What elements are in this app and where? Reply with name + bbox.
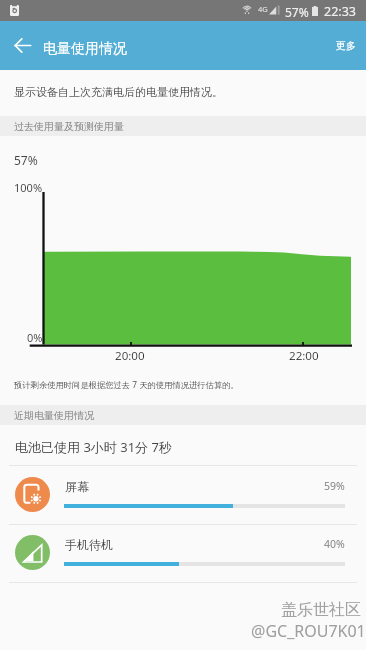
staticText: 更多 <box>336 39 356 52</box>
button[interactable]: Back <box>5 28 39 62</box>
staticText: 电量使用情况 <box>43 40 127 58</box>
staticText: 电池已使用 3小时 31分 7秒 <box>15 438 172 456</box>
staticText: 过去使用量及预测使用量 <box>14 120 124 133</box>
staticText: 22:33 <box>324 3 356 20</box>
staticText: 40% <box>324 537 345 551</box>
button[interactable]: 更多 <box>325 28 366 62</box>
staticText: 盖乐世社区 <box>281 600 361 620</box>
button[interactable]: 手机待机 <box>0 524 366 582</box>
staticText: 57% <box>285 4 309 20</box>
staticText: 屏幕 <box>65 479 89 494</box>
staticText: 57% <box>14 152 38 168</box>
button[interactable]: 屏幕 <box>0 466 366 524</box>
staticText: 0% <box>27 330 43 345</box>
staticText: 20:00 <box>115 348 145 364</box>
staticText: 22:00 <box>289 348 319 364</box>
staticText: 4G <box>258 4 268 14</box>
staticText: 手机待机 <box>65 537 113 552</box>
staticText: 100% <box>14 180 43 195</box>
staticText: 近期电量使用情况 <box>14 409 94 422</box>
staticText: 59% <box>324 479 345 493</box>
staticText: 显示设备自上次充满电后的电量使用情况。 <box>14 85 223 99</box>
staticText: 预计剩余使用时间是根据您过去 7 天的使用情况进行估算的。 <box>14 379 239 390</box>
staticText: @GC_ROU7K01R <box>251 620 366 642</box>
